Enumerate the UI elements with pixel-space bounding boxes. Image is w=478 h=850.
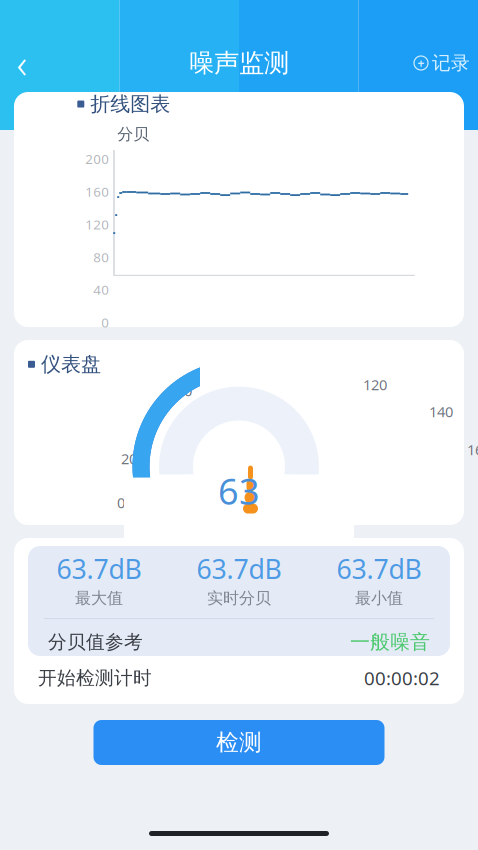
button[interactable]: +	[406, 43, 478, 83]
staticText: 200	[85, 150, 109, 168]
staticText: 60	[176, 381, 192, 400]
staticText: 最大值	[75, 588, 123, 608]
staticText: 0	[101, 313, 109, 331]
staticText: ‹	[16, 36, 27, 89]
staticText: 63	[218, 467, 260, 515]
button[interactable]: Back	[0, 41, 44, 85]
staticText: 最小值	[355, 588, 403, 608]
staticText: 00:00:02	[364, 666, 440, 690]
staticText: 120	[363, 375, 387, 394]
staticText: 一般噪音	[350, 630, 430, 654]
staticText: 63.7dB	[196, 551, 281, 586]
staticText: 0	[117, 493, 125, 512]
button[interactable]: 检测	[93, 720, 384, 765]
staticText: 分贝	[117, 124, 149, 144]
staticText: 40	[142, 411, 158, 430]
staticText: +	[417, 55, 424, 71]
staticText: 检测	[216, 729, 262, 756]
staticText: 实时分贝	[207, 588, 271, 608]
staticText: 120	[85, 215, 109, 233]
staticText: 20	[121, 449, 137, 468]
staticText: 40	[93, 281, 109, 298]
staticText: 160	[85, 183, 109, 200]
staticText: 160	[467, 440, 478, 459]
staticText: 仪表盘	[41, 352, 101, 377]
staticText: 63.7dB	[56, 551, 141, 586]
staticText: 噪声监测	[189, 47, 289, 78]
staticText: 记录	[432, 51, 470, 74]
staticText: 63.7dB	[336, 551, 421, 586]
staticText: 折线图表	[90, 92, 170, 116]
staticText: 140	[429, 402, 453, 421]
staticText: 80	[93, 248, 109, 266]
staticText: 分贝值参考	[48, 631, 143, 653]
staticText: 开始检测计时	[38, 666, 152, 689]
